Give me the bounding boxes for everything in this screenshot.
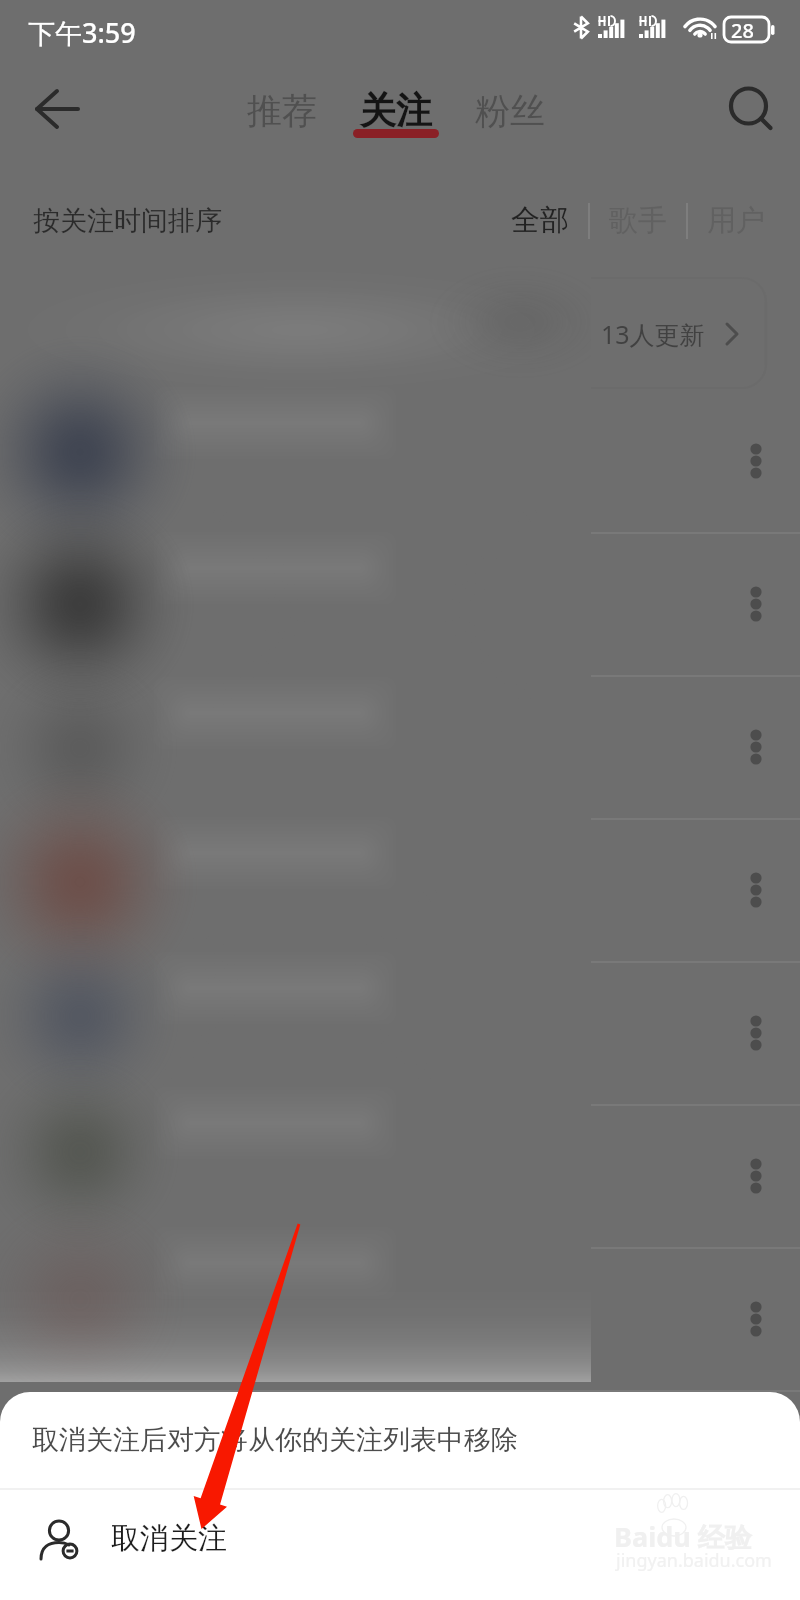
button[interactable]: Back: [13, 65, 101, 153]
staticText: 按关注时间排序: [33, 204, 222, 238]
staticText: 13人更新: [601, 317, 705, 351]
button[interactable]: 关注: [353, 88, 439, 133]
button[interactable]: Search: [706, 65, 794, 153]
button[interactable]: 粉丝: [475, 89, 545, 133]
staticText: 取消关注后对方将从你的关注列表中移除: [32, 1423, 518, 1457]
button[interactable]: 13人更新: [601, 302, 748, 366]
button[interactable]: 用户: [707, 202, 765, 239]
staticText: 取消关注: [111, 1520, 227, 1557]
staticText: jingyan.baidu.com: [616, 1548, 772, 1573]
button[interactable]: 歌手: [609, 202, 667, 239]
button[interactable]: 取消关注: [0, 1490, 800, 1600]
button[interactable]: 全部: [511, 202, 569, 239]
button[interactable]: 推荐: [247, 89, 317, 133]
staticText: 28: [731, 17, 754, 44]
staticText: 粉丝: [475, 89, 545, 133]
staticText: 下午3:59: [28, 14, 136, 51]
staticText: 推荐: [247, 89, 317, 133]
staticText: Baidu 经验: [614, 1518, 752, 1555]
staticText: 关注: [360, 88, 432, 133]
